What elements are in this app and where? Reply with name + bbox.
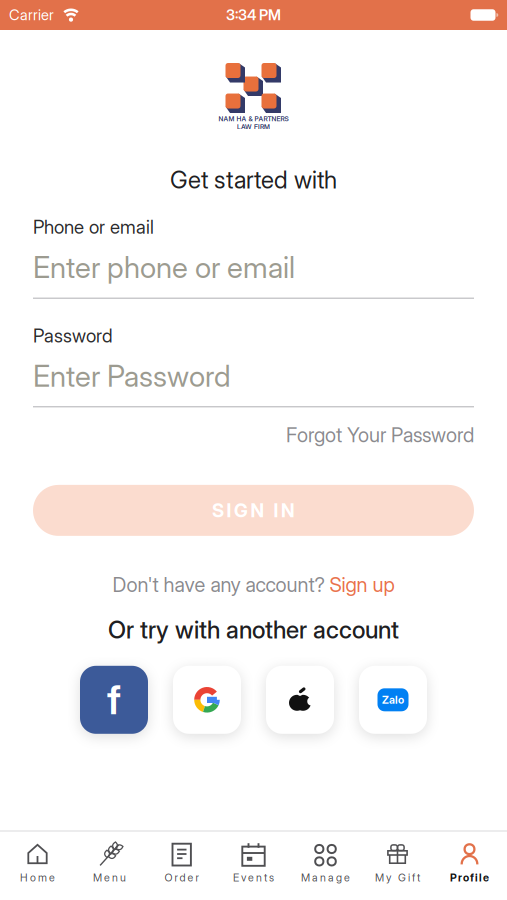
staticText: M e n u (93, 871, 126, 884)
staticText: Don't have any account? (112, 573, 324, 596)
staticText: Phone or email (33, 216, 154, 238)
staticText: M y G i f t (375, 871, 420, 884)
staticText: Get started with (170, 166, 337, 194)
button[interactable]: M a n a g e (289, 832, 361, 892)
button[interactable]: Sign in with Zalo (359, 666, 427, 734)
staticText: Or try with another account (108, 615, 399, 644)
staticText: Enter Password (33, 359, 231, 393)
staticText: Carrier (9, 6, 54, 24)
staticText: P r o f i l e (450, 871, 489, 884)
button[interactable]: Sign up (324, 573, 394, 596)
staticText: 3:34 PM (226, 6, 281, 24)
button[interactable]: Sign in with Facebook (80, 666, 148, 734)
button[interactable]: M y G i f t (361, 832, 433, 892)
textField[interactable]: Enter phone or email (33, 250, 474, 285)
staticText: Enter phone or email (33, 250, 295, 285)
button[interactable]: Sign in with Apple (266, 666, 334, 734)
staticText: Password (33, 325, 113, 347)
staticText: E v e n t s (233, 871, 274, 884)
textField[interactable]: Enter Password (33, 359, 474, 393)
button[interactable]: P r o f i l e (433, 832, 505, 892)
button[interactable]: M e n u (73, 832, 145, 892)
button[interactable]: H o m e (1, 832, 73, 892)
button[interactable]: SIGN IN (33, 485, 474, 536)
button[interactable]: E v e n t s (217, 832, 289, 892)
staticText: SIGN IN (212, 499, 295, 521)
staticText: H o m e (20, 871, 55, 884)
staticText: M a n a g e (301, 871, 350, 884)
staticText: f (107, 676, 121, 723)
staticText: Zalo (382, 693, 404, 706)
staticText: Forgot Your Password (286, 423, 474, 447)
button[interactable]: Sign in with Google (173, 666, 241, 734)
button[interactable]: O r d e r (145, 832, 217, 892)
staticText: NAM HA & PARTNERS (218, 115, 288, 123)
button[interactable]: Forgot Your Password (286, 423, 474, 447)
staticText: O r d e r (164, 871, 198, 884)
staticText: LAW FIRM (237, 123, 270, 131)
staticText: Sign up (324, 573, 394, 596)
